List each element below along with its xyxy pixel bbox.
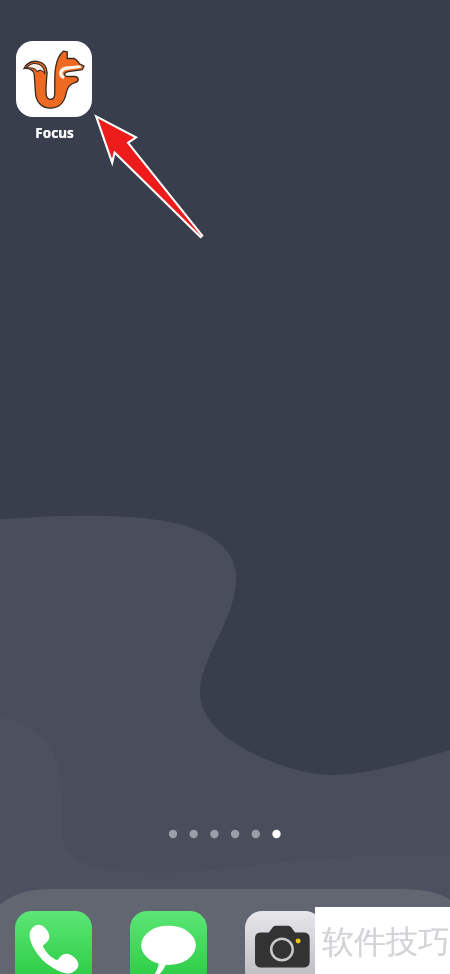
staticText: Focus	[35, 124, 74, 142]
button[interactable]: Focus	[16, 41, 92, 142]
button[interactable]: Phone	[15, 911, 92, 974]
staticText: 软件技巧	[322, 922, 450, 962]
button[interactable]: Camera	[245, 911, 322, 974]
button[interactable]: Messages	[130, 911, 207, 974]
